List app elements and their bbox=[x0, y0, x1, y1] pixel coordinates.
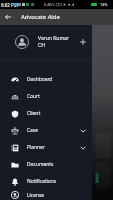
button[interactable]: Client bbox=[0, 105, 92, 122]
staticText: License bbox=[27, 192, 45, 199]
staticText: Advocate Aide bbox=[21, 13, 60, 21]
button[interactable]: Case bbox=[0, 122, 92, 139]
staticText: Client bbox=[27, 110, 41, 117]
staticText: Varun Kumar bbox=[38, 35, 69, 42]
button[interactable]: License bbox=[0, 190, 92, 200]
button[interactable]: Planner bbox=[0, 139, 92, 156]
staticText: Documents bbox=[27, 161, 54, 168]
staticText: 6:02 PM bbox=[1, 2, 18, 8]
button[interactable]: Dashboard bbox=[0, 71, 92, 88]
staticText: Court bbox=[27, 93, 40, 100]
button[interactable]: Varun Kumar bbox=[0, 25, 92, 59]
staticText: Dashboard bbox=[27, 76, 53, 83]
staticText: Case bbox=[27, 127, 38, 134]
staticText: 0.4K/s bbox=[44, 2, 55, 7]
staticText: Planner bbox=[27, 144, 45, 151]
button[interactable]: Court bbox=[0, 88, 92, 105]
button[interactable]: Add account bbox=[77, 36, 89, 48]
button[interactable]: Notifications bbox=[0, 173, 92, 190]
staticText: Notifications bbox=[27, 178, 57, 185]
staticText: 14% bbox=[100, 2, 108, 7]
button[interactable]: Documents bbox=[0, 156, 92, 173]
staticText: CH bbox=[38, 42, 45, 49]
button[interactable]: Back bbox=[2, 11, 14, 23]
